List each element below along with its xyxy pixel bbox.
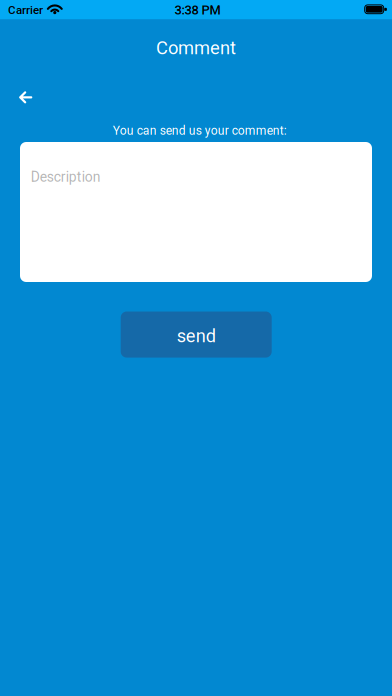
staticText: 3:38 PM [175, 2, 221, 17]
button[interactable]: send [121, 311, 272, 358]
button[interactable]: Back [4, 76, 47, 118]
staticText: Description [31, 169, 101, 185]
staticText: send [177, 325, 216, 347]
staticText: You can send us your comment: [113, 123, 287, 138]
staticText: Carrier [8, 3, 43, 17]
textField[interactable]: Description [20, 142, 372, 282]
staticText: Comment [156, 37, 236, 59]
navigationBar: Comment [0, 36, 392, 60]
